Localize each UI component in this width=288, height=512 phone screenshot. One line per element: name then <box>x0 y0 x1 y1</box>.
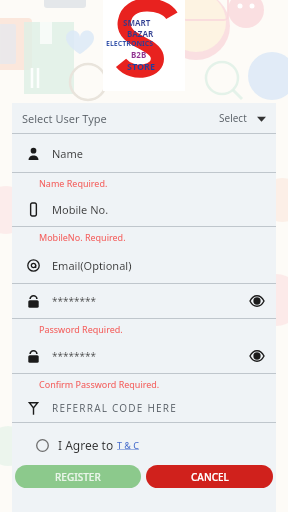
staticText: REFERRAL CODE HERE <box>52 401 264 415</box>
staticText: Confirm Password Required. <box>39 378 160 390</box>
staticText: SMART <box>123 17 151 28</box>
other: Show password <box>250 294 264 308</box>
staticText: T & C <box>117 439 139 451</box>
staticText: I Agree to <box>58 437 117 453</box>
staticText: STORE <box>127 60 156 72</box>
staticText: CANCEL <box>191 470 229 484</box>
staticText: REGISTER <box>55 470 101 484</box>
button[interactable]: REFERRAL CODE HERE <box>12 394 276 422</box>
button[interactable]: Name <box>12 134 276 172</box>
staticText: Mobile No. <box>52 202 264 217</box>
button[interactable]: ******** <box>12 284 276 318</box>
staticText: B2B <box>131 49 147 60</box>
staticText: ******** <box>52 294 250 308</box>
staticText: MobileNo. Required. <box>39 231 126 243</box>
other: Open dropdown <box>257 114 266 123</box>
staticText: Email(Optional) <box>52 258 264 273</box>
staticText: Select User Type <box>22 111 219 126</box>
button[interactable]: I Agree to <box>12 431 276 459</box>
button[interactable]: Select User Type <box>12 103 276 133</box>
button[interactable]: ******** <box>12 339 276 373</box>
button[interactable]: Mobile No. <box>12 193 276 226</box>
staticText: BAZAR <box>127 28 154 39</box>
staticText: ELECTRONICS <box>106 39 154 49</box>
staticText: Select <box>219 111 247 125</box>
button[interactable]: REGISTER <box>15 465 141 488</box>
button[interactable]: Email(Optional) <box>12 247 276 283</box>
staticText: Name Required. <box>39 177 108 189</box>
staticText: Name <box>52 146 264 161</box>
staticText: Password Required. <box>39 323 123 335</box>
staticText: ******** <box>52 349 250 363</box>
button[interactable]: CANCEL <box>146 465 273 488</box>
other: Show password <box>250 349 264 363</box>
